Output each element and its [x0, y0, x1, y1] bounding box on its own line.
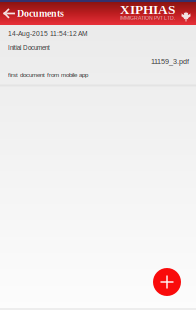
staticText: first document from mobile app: [8, 71, 88, 78]
staticText: 11159_3.pdf: [151, 57, 189, 65]
staticText: IMMIGRATION PVT LTD.: [120, 15, 175, 21]
button[interactable]: Back to Documents: [0, 2, 68, 25]
button[interactable]: Add document: [153, 268, 181, 296]
staticText: Documents: [17, 8, 64, 19]
staticText: Initial Document: [8, 44, 50, 51]
button[interactable]: 14-Aug-2015 11:54:12 AM: [0, 25, 196, 86]
staticText: XIPHIAS: [120, 2, 175, 17]
staticText: 14-Aug-2015 11:54:12 AM: [8, 30, 88, 37]
